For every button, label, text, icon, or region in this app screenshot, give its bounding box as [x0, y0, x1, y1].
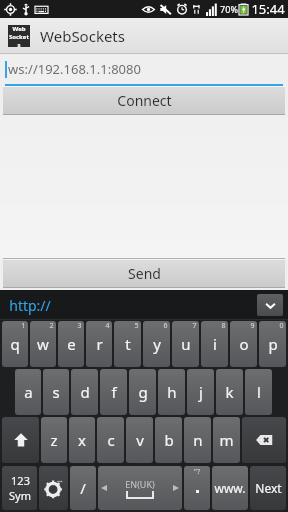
button[interactable]: o — [230, 321, 257, 367]
button[interactable]: k — [216, 369, 243, 415]
button[interactable]: g — [129, 369, 156, 415]
button[interactable]: w — [30, 321, 56, 367]
staticText: Sockets — [8, 33, 30, 47]
button[interactable]: d — [71, 369, 98, 415]
button[interactable]: v — [126, 417, 153, 463]
staticText: 3 — [77, 321, 82, 331]
staticText: s — [52, 382, 60, 402]
staticText: 5 — [134, 321, 139, 331]
staticText: Send — [128, 264, 161, 283]
staticText: b — [164, 430, 174, 450]
button[interactable]: www. — [212, 466, 248, 510]
staticText: Web — [12, 25, 26, 33]
staticText: www. — [214, 480, 246, 496]
button[interactable]: y — [143, 321, 170, 367]
staticText: 2 — [49, 321, 54, 331]
button[interactable]: Expand suggestions — [257, 294, 283, 316]
staticText: y — [153, 334, 161, 354]
staticText: p — [268, 334, 278, 354]
button[interactable]: e — [58, 321, 84, 367]
button[interactable]: z — [41, 417, 67, 463]
button[interactable]: x — [69, 417, 95, 463]
staticText: q — [10, 334, 20, 354]
staticText: w — [37, 334, 49, 354]
button[interactable]: s — [43, 369, 69, 415]
staticText: j — [199, 382, 203, 402]
button[interactable]: / — [70, 466, 96, 510]
staticText: m — [219, 430, 234, 450]
button[interactable]: j — [187, 369, 214, 415]
button[interactable]: f — [100, 369, 127, 415]
button[interactable]: Send — [3, 259, 285, 288]
button[interactable]: 123 — [2, 466, 37, 510]
staticText: t — [125, 334, 131, 354]
staticText: 7 — [192, 321, 197, 331]
button[interactable]: t — [114, 321, 141, 367]
staticText: ws://192.168.1.1:8080 — [8, 60, 141, 78]
button[interactable]: c — [97, 417, 124, 463]
staticText: h — [167, 382, 177, 402]
button[interactable]: p — [259, 321, 286, 367]
staticText: o — [239, 334, 249, 354]
button[interactable]: Shift — [2, 417, 39, 463]
staticText: e — [67, 334, 76, 354]
button[interactable]: a — [15, 369, 41, 415]
staticText: f — [111, 382, 117, 402]
button[interactable]: Connect — [3, 86, 285, 115]
button[interactable]: q — [2, 321, 28, 367]
staticText: r — [96, 334, 103, 354]
staticText: g — [138, 382, 148, 402]
staticText: WebSockets — [40, 26, 125, 46]
staticText: k — [225, 382, 234, 402]
staticText: EN(UK) — [125, 478, 155, 490]
staticText: d — [80, 382, 90, 402]
staticText: Next — [255, 480, 282, 496]
staticText: 0 — [279, 321, 284, 331]
staticText: v — [136, 430, 144, 450]
staticText: 15:44 — [251, 0, 285, 18]
staticText: u — [181, 334, 191, 354]
staticText: 8 — [221, 321, 226, 331]
button[interactable]: m — [213, 417, 240, 463]
staticText: c — [107, 430, 115, 450]
staticText: 4 — [105, 321, 110, 331]
button[interactable]: b — [155, 417, 182, 463]
button[interactable]: r — [86, 321, 112, 367]
staticText: i — [213, 334, 217, 354]
button[interactable]: h — [158, 369, 185, 415]
staticText: Connect — [117, 91, 172, 110]
staticText: "? — [194, 467, 200, 477]
staticText: 70% — [220, 3, 238, 15]
button[interactable]: Settings — [39, 466, 68, 510]
button[interactable]: http:// — [9, 296, 51, 315]
staticText: n — [193, 430, 203, 450]
staticText: Sym — [9, 488, 31, 503]
staticText: a — [24, 382, 33, 402]
staticText: / — [80, 478, 86, 498]
button[interactable]: i — [201, 321, 228, 367]
staticText: z — [50, 430, 58, 450]
staticText: 9 — [250, 321, 255, 331]
button[interactable]: Period — [184, 466, 210, 510]
button[interactable]: Backspace — [242, 417, 286, 463]
button[interactable]: l — [245, 369, 272, 415]
staticText: 1 — [21, 321, 26, 331]
button[interactable]: ws://192.168.1.1:8080 — [0, 54, 288, 86]
staticText: l — [257, 382, 261, 402]
button[interactable]: Next — [250, 466, 286, 510]
button[interactable]: Space — [98, 466, 182, 510]
button[interactable]: u — [172, 321, 199, 367]
staticText: x — [78, 430, 86, 450]
staticText: 123 — [11, 473, 30, 488]
button[interactable]: n — [184, 417, 211, 463]
staticText: http:// — [9, 296, 51, 315]
staticText: 6 — [163, 321, 168, 331]
